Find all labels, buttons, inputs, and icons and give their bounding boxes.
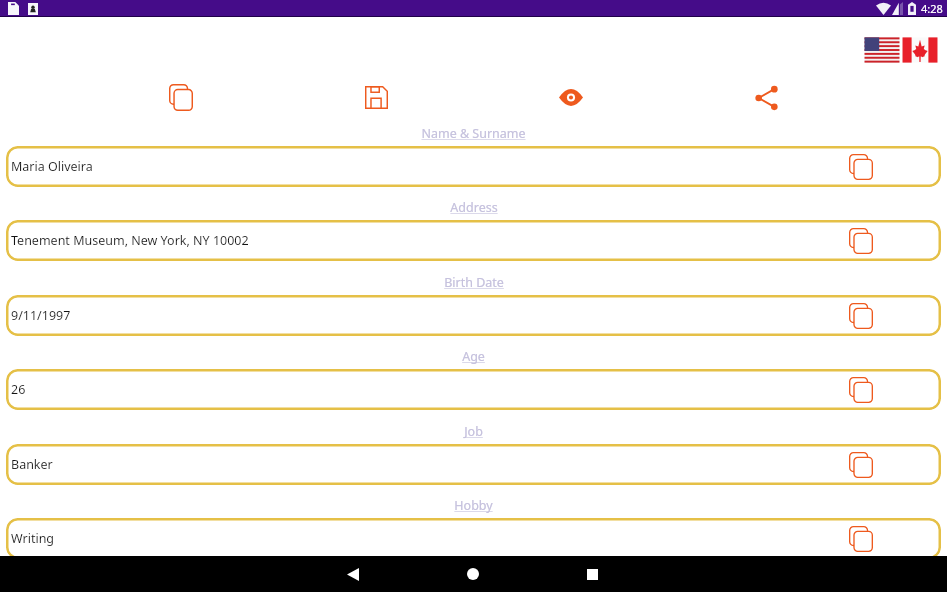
button[interactable]: Copy [845,299,877,333]
staticText: Maria Oliveira [11,158,93,175]
button[interactable]: Copy [845,150,877,184]
button[interactable]: Recents [574,556,610,592]
button[interactable]: English (Canada) [901,36,939,64]
staticText: Hobby [454,497,493,514]
button[interactable]: 26 [6,369,941,410]
staticText: Writing [11,530,55,547]
button[interactable]: Home [455,556,491,592]
staticText: Address [450,199,498,216]
button[interactable]: English (United States) [863,36,901,64]
button[interactable]: Banker [6,444,941,485]
button[interactable]: Tenement Museum, New York, NY 10002 [6,220,941,261]
button[interactable]: Save [359,80,394,115]
button[interactable]: Share [749,79,784,117]
staticText: 9/11/1997 [11,307,71,324]
staticText: 26 [11,381,26,398]
button[interactable]: 9/11/1997 [6,295,941,336]
button[interactable]: Copy [845,522,877,556]
staticText: Tenement Museum, New York, NY 10002 [11,232,249,249]
button[interactable]: Copy [845,373,877,407]
staticText: Banker [11,456,53,473]
button[interactable]: Copy [845,224,877,258]
button[interactable]: Maria Oliveira [6,146,941,187]
button[interactable]: Writing [6,518,941,559]
button[interactable]: Copy [845,448,877,482]
staticText: Name & Surname [421,125,526,142]
staticText: Job [464,423,483,440]
button[interactable]: Copy all [163,78,199,117]
staticText: Age [462,348,485,365]
staticText: 4:28 [921,1,943,16]
button[interactable]: Back [335,556,371,592]
staticText: Birth Date [444,274,504,291]
button[interactable]: Preview [553,84,589,111]
